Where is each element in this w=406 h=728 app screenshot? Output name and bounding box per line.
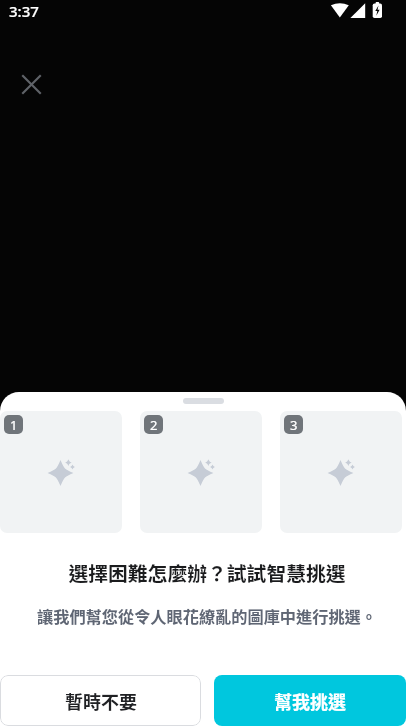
button[interactable]: Photo 3: [280, 411, 402, 533]
staticText: 暫時不要: [65, 688, 137, 714]
staticText: 幫我挑選: [274, 688, 346, 714]
staticText: 2: [150, 416, 158, 434]
staticText: 3: [290, 416, 298, 434]
staticText: 選擇困難怎麼辦？試試智慧挑選: [4, 558, 406, 587]
button[interactable]: Close: [11, 64, 52, 105]
staticText: 3:37: [9, 1, 39, 21]
button[interactable]: Photo 2: [140, 411, 262, 533]
button[interactable]: 幫我挑選: [214, 675, 406, 726]
button[interactable]: Photo 1: [0, 411, 122, 533]
button[interactable]: 暫時不要: [0, 675, 201, 726]
staticText: 1: [10, 416, 18, 434]
staticText: 讓我們幫您從令人眼花繚亂的圖庫中進行挑選。: [4, 604, 406, 627]
